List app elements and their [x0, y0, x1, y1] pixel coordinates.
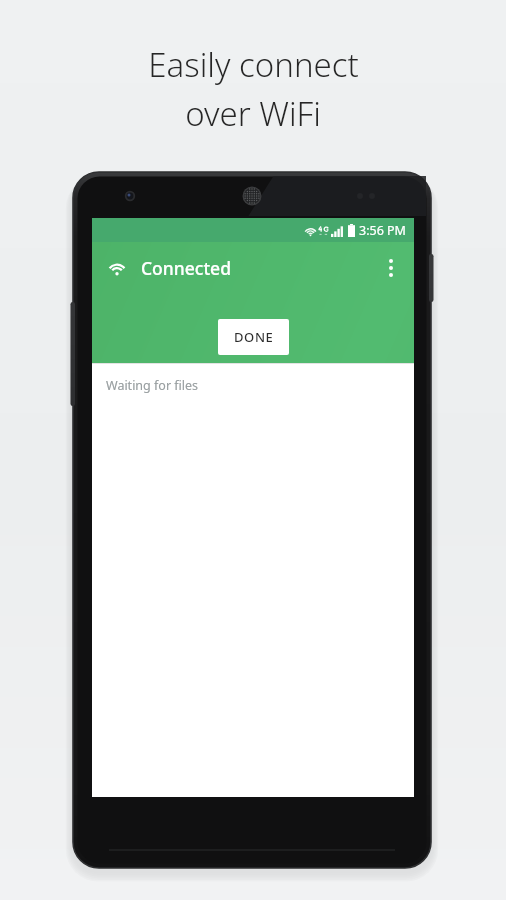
button[interactable]: More options — [375, 252, 407, 284]
staticText: Easily connect — [148, 42, 359, 87]
staticText: DONE — [234, 328, 274, 346]
staticText: Waiting for files — [106, 377, 199, 394]
staticText: over WiFi — [185, 91, 321, 136]
staticText: 3:56 PM — [359, 222, 406, 239]
button[interactable]: DONE — [218, 319, 289, 355]
staticText: Connected — [141, 256, 231, 280]
button[interactable]: WiFi connected — [102, 253, 132, 283]
